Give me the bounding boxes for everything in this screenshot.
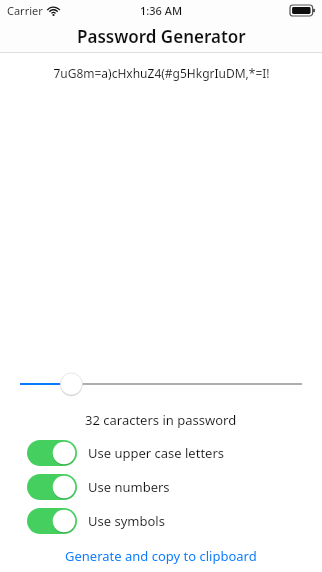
button[interactable]: On (0, 440, 322, 466)
staticText: 32 caracters in password (85, 411, 237, 429)
other: On (27, 474, 77, 500)
staticText: Use symbols (88, 512, 165, 530)
button[interactable]: On (0, 474, 322, 500)
button[interactable]: Generate and copy to clipboard (0, 544, 322, 568)
staticText: Use numbers (88, 478, 170, 496)
staticText: Generate and copy to clipboard (65, 547, 257, 565)
button[interactable]: On (0, 508, 322, 534)
button[interactable]: Password length slider (20, 370, 302, 398)
staticText: Carrier (7, 3, 43, 18)
staticText: 1:36 AM (140, 3, 183, 18)
staticText: Use upper case letters (88, 444, 225, 462)
other: On (27, 440, 77, 466)
staticText: 7uG8m=a)cHxhuZ4(#g5HkgrIuDM,*=I! (53, 65, 270, 81)
staticText: Password Generator (77, 25, 246, 48)
other: On (27, 508, 77, 534)
